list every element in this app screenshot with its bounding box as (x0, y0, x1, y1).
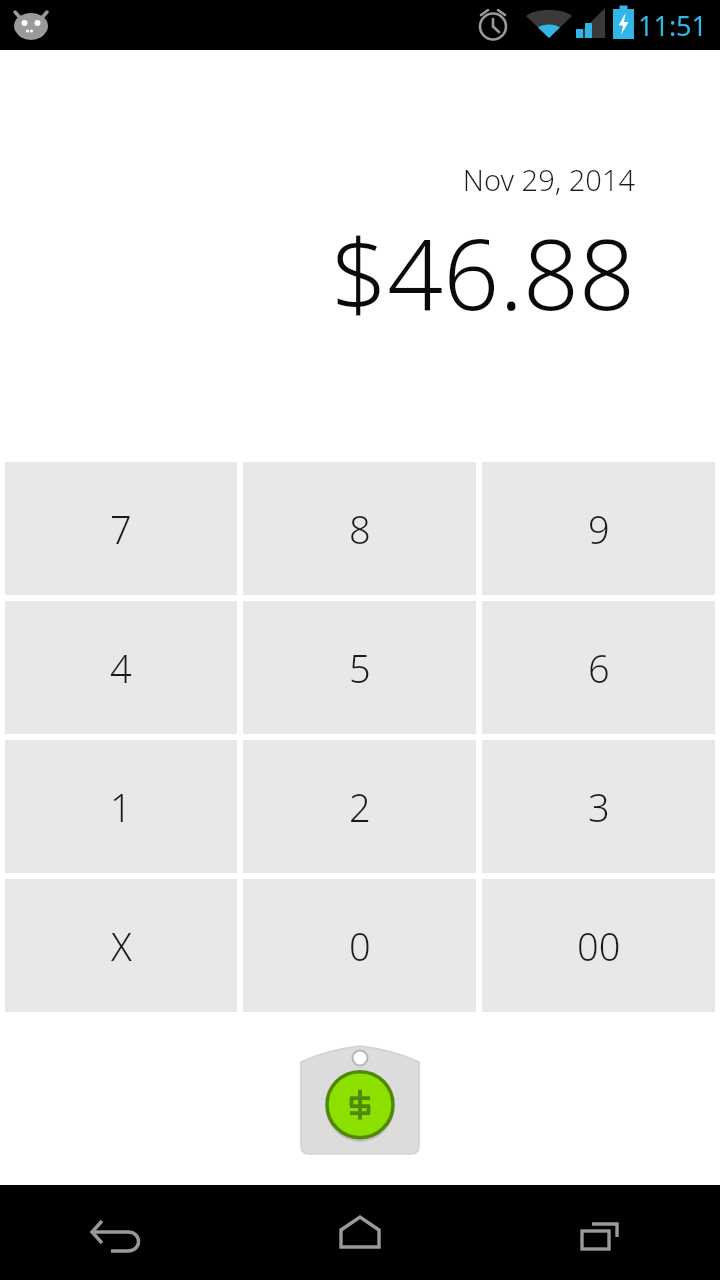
staticText: 7 (110, 503, 132, 555)
button[interactable]: Home (240, 1185, 480, 1280)
button[interactable]: 2 (243, 740, 476, 873)
button[interactable]: 00 (482, 879, 715, 1012)
staticText: 2 (349, 781, 371, 833)
staticText: 11:51 (638, 7, 708, 44)
staticText: 5 (349, 642, 371, 694)
button[interactable]: Back (0, 1185, 240, 1280)
button[interactable]: X (5, 879, 237, 1012)
staticText: 0 (349, 920, 371, 972)
button[interactable]: 7 (5, 462, 237, 595)
staticText: $46.88 (331, 205, 635, 338)
button[interactable]: 8 (243, 462, 476, 595)
staticText: 8 (349, 503, 371, 555)
button[interactable]: 3 (482, 740, 715, 873)
button[interactable]: 6 (482, 601, 715, 734)
staticText: 1 (110, 781, 132, 833)
button[interactable]: 0 (243, 879, 476, 1012)
button[interactable]: 1 (5, 740, 237, 873)
staticText: 3 (588, 781, 610, 833)
button[interactable]: 9 (482, 462, 715, 595)
staticText: 4 (110, 642, 132, 694)
button[interactable]: 5 (243, 601, 476, 734)
staticText: 9 (588, 503, 610, 555)
button[interactable]: Recent apps (480, 1185, 720, 1280)
staticText: Nov 29, 2014 (462, 160, 635, 199)
button[interactable]: 4 (5, 601, 237, 734)
button[interactable]: Save payment (299, 1040, 421, 1162)
staticText: 00 (577, 920, 621, 972)
staticText: X (111, 920, 132, 972)
staticText: 6 (588, 642, 610, 694)
